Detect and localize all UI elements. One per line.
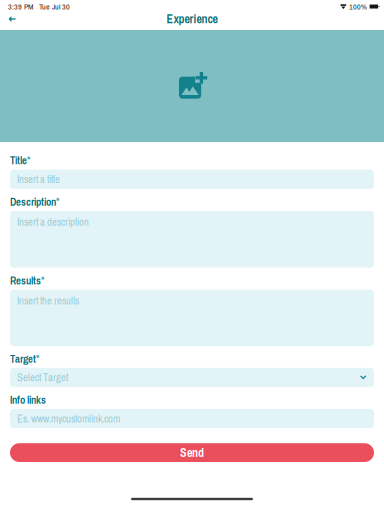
staticText: Description [10, 195, 56, 209]
button[interactable]: Results [10, 290, 374, 346]
staticText: * [56, 195, 59, 209]
button[interactable]: Add photo [0, 30, 384, 142]
staticText: Es. www.mycustomlink.com [17, 411, 120, 426]
staticText: Info links [10, 393, 46, 407]
button[interactable]: Description [10, 211, 374, 268]
staticText: 100% [349, 1, 367, 12]
staticText: Insert a title [17, 172, 60, 186]
staticText: * [41, 273, 44, 288]
staticText: Experience [166, 11, 217, 27]
staticText: * [27, 153, 30, 168]
button[interactable]: Target [10, 368, 374, 387]
staticText: Results [10, 273, 41, 288]
staticText: * [36, 352, 39, 366]
staticText: Tue Jul 30 [39, 1, 70, 12]
button[interactable]: Info links [10, 409, 374, 428]
staticText: Insert a description [17, 215, 89, 229]
button[interactable]: Back [0, 13, 24, 25]
staticText: Target [10, 352, 36, 366]
staticText: Select Target [17, 370, 68, 385]
staticText: Title [10, 153, 27, 168]
staticText: Insert the results [17, 293, 79, 308]
button[interactable]: Send [10, 443, 374, 462]
staticText: 3:39 PM [8, 1, 33, 12]
button[interactable]: Title [10, 169, 374, 189]
staticText: Send [180, 444, 204, 461]
